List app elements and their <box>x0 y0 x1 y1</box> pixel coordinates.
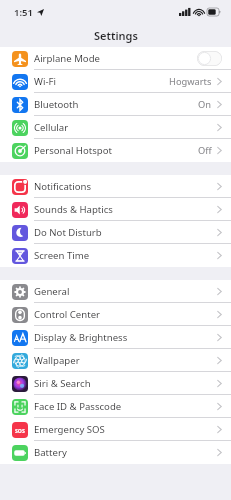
staticText: Display & Brightness <box>34 331 128 344</box>
button[interactable]: Battery <box>0 441 231 464</box>
staticText: Cellular <box>34 121 69 134</box>
button[interactable]: Screen Time <box>0 244 231 267</box>
button[interactable]: Notifications <box>0 175 231 198</box>
button[interactable]: Sounds & Haptics <box>0 198 231 221</box>
staticText: General <box>34 285 70 298</box>
staticText: Control Center <box>34 308 101 321</box>
staticText: Do Not Disturb <box>34 226 102 239</box>
button[interactable]: Personal Hotspot <box>0 139 231 162</box>
button[interactable]: Control Center <box>0 303 231 326</box>
staticText: Face ID & Passcode <box>34 400 122 413</box>
staticText: Personal Hotspot <box>34 144 112 157</box>
button[interactable]: Face ID & Passcode <box>0 395 231 418</box>
staticText: Wallpaper <box>34 354 80 367</box>
staticText: SOS <box>15 427 25 434</box>
staticText: Hogwarts <box>169 75 212 88</box>
button[interactable]: Wi-Fi <box>0 70 231 93</box>
staticText: 1:51 <box>14 6 33 19</box>
staticText: Airplane Mode <box>34 52 100 65</box>
button[interactable]: Bluetooth <box>0 93 231 116</box>
button[interactable]: Wallpaper <box>0 349 231 372</box>
button[interactable]: SOS <box>0 418 231 441</box>
staticText: Wi-Fi <box>34 75 56 88</box>
staticText: Notifications <box>34 180 92 193</box>
button[interactable]: General <box>0 280 231 303</box>
button[interactable]: Display & Brightness <box>0 326 231 349</box>
staticText: Battery <box>34 446 67 459</box>
staticText: Siri & Search <box>34 377 91 390</box>
staticText: Emergency SOS <box>34 423 105 436</box>
button[interactable]: Airplane Mode <box>0 47 231 70</box>
button[interactable]: Siri & Search <box>0 372 231 395</box>
button[interactable]: Cellular <box>0 116 231 139</box>
staticText: Sounds & Haptics <box>34 203 113 216</box>
staticText: On <box>198 98 212 111</box>
staticText: Screen Time <box>34 249 90 262</box>
button[interactable]: Do Not Disturb <box>0 221 231 244</box>
staticText: Settings <box>94 28 138 43</box>
button[interactable]: Airplane Mode toggle <box>197 51 222 66</box>
staticText: Bluetooth <box>34 98 79 111</box>
staticText: Off <box>198 144 212 157</box>
